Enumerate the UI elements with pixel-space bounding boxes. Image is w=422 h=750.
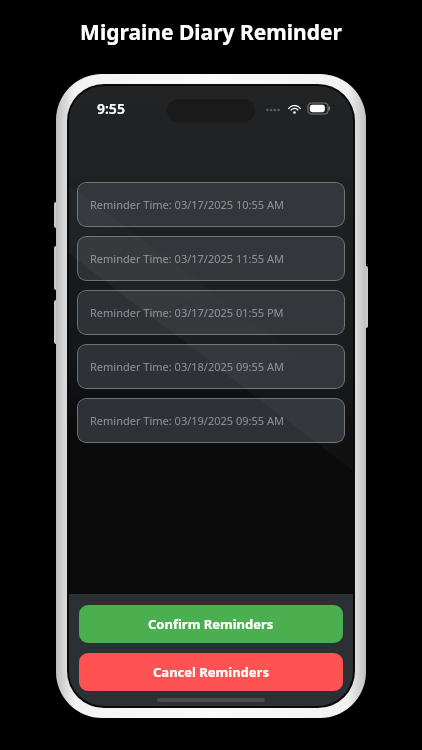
staticText: Reminder Time: 03/17/2025 11:55 AM [90, 251, 284, 266]
staticText: Reminder Time: 03/17/2025 10:55 AM [90, 197, 284, 212]
staticText: Confirm Reminders [148, 615, 274, 633]
button[interactable]: Cancel Reminders [79, 653, 343, 691]
button[interactable]: Reminder Time: 03/19/2025 09:55 AM [77, 398, 345, 443]
button[interactable]: Reminder Time: 03/17/2025 01:55 PM [77, 290, 345, 335]
staticText: Migraine Diary Reminder [80, 18, 342, 47]
staticText: Reminder Time: 03/18/2025 09:55 AM [90, 359, 284, 374]
staticText: 9:55 [97, 99, 125, 118]
staticText: Reminder Time: 03/19/2025 09:55 AM [90, 413, 284, 428]
staticText: Cancel Reminders [153, 663, 269, 681]
button[interactable]: Reminder Time: 03/17/2025 11:55 AM [77, 236, 345, 281]
button[interactable]: Confirm Reminders [79, 605, 343, 643]
staticText: Reminder Time: 03/17/2025 01:55 PM [90, 305, 284, 320]
button[interactable]: Reminder Time: 03/18/2025 09:55 AM [77, 344, 345, 389]
button[interactable]: Reminder Time: 03/17/2025 10:55 AM [77, 182, 345, 227]
